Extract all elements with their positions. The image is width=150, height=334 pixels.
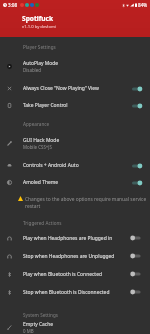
button[interactable]: Switch on	[130, 177, 142, 189]
button[interactable]: Empty Cache	[0, 321, 150, 334]
staticText: Disabled	[23, 67, 41, 73]
button[interactable]: Switch off	[130, 286, 142, 298]
button[interactable]: Stop when Headphones are Unplugged	[0, 247, 150, 265]
button[interactable]: Stop when Bluetooth is Disconnected	[0, 283, 150, 301]
staticText: Stop when Bluetooth is Disconnected	[23, 289, 110, 296]
staticText: 0 MB	[23, 328, 34, 334]
staticText: Play when Bluetooth is Connected	[23, 271, 102, 278]
button[interactable]: Always Close "Now Playing" View	[0, 80, 150, 97]
staticText: GUI Hack Mode	[23, 137, 60, 144]
staticText: AutoPlay Mode	[23, 60, 59, 67]
staticText: Stop when Headphones are Unplugged	[23, 253, 115, 260]
button[interactable]: Switch on	[130, 83, 142, 95]
button[interactable]: Switch on	[130, 100, 142, 112]
button[interactable]: Controls + Android Auto	[0, 157, 150, 174]
button[interactable]: Switch on	[130, 160, 142, 172]
staticText: Controls + Android Auto	[23, 162, 79, 169]
button[interactable]: AutoPlay Mode	[0, 53, 150, 80]
staticText: v1.1.0 by devlomi	[22, 24, 56, 30]
button[interactable]: Switch off	[130, 268, 142, 280]
staticText: Appearance	[23, 121, 50, 127]
staticText: 84%	[138, 2, 148, 8]
staticText: 3:08	[8, 2, 18, 8]
staticText: Changes to the above options require man…	[25, 196, 147, 210]
button[interactable]: Switch off	[130, 250, 142, 262]
staticText: Player Settings	[23, 44, 56, 50]
staticText: Mobile CSS+JS	[23, 144, 52, 150]
staticText: Play when Headphones are Plugged in	[23, 235, 113, 242]
button[interactable]: GUI Hack Mode	[0, 130, 150, 157]
button[interactable]: Play when Bluetooth is Connected	[0, 265, 150, 283]
staticText: Triggered Actions	[23, 220, 62, 226]
button[interactable]: Amoled Theme	[0, 174, 150, 191]
staticText: Always Close "Now Playing" View	[23, 85, 99, 92]
staticText: Empty Cache	[23, 321, 54, 328]
staticText: System Settings	[23, 312, 59, 318]
staticText: Amoled Theme	[23, 179, 59, 186]
button[interactable]: Switch off	[130, 232, 142, 244]
button[interactable]: Take Player Control	[0, 97, 150, 114]
button[interactable]: Play when Headphones are Plugged in	[0, 229, 150, 247]
staticText: Spotifuck	[22, 14, 54, 23]
staticText: Take Player Control	[23, 102, 68, 109]
